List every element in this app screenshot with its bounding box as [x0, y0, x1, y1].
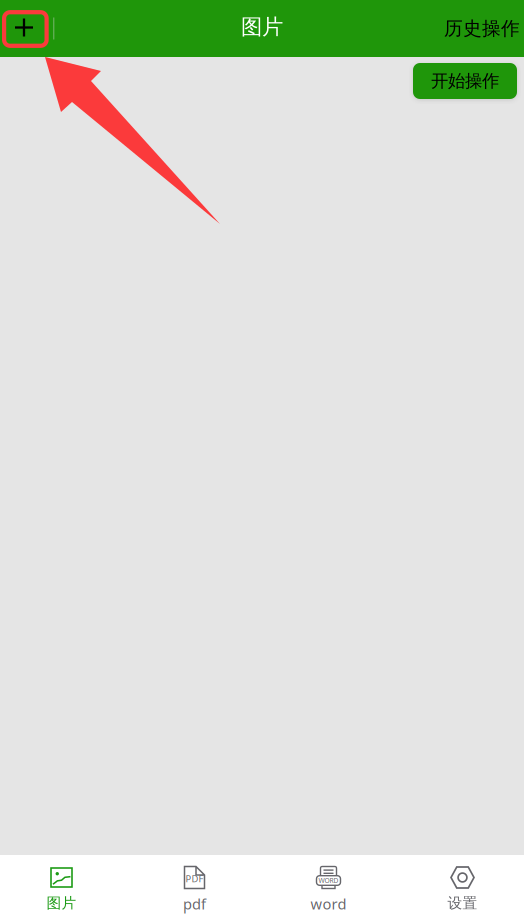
- staticText: WORD: [318, 876, 338, 885]
- button[interactable]: 开始操作: [413, 63, 517, 99]
- staticText: 图片: [241, 14, 283, 40]
- staticText: word: [310, 894, 346, 913]
- button[interactable]: 历史操作: [444, 9, 524, 48]
- staticText: PDF: [185, 873, 203, 885]
- staticText: 历史操作: [444, 17, 520, 40]
- staticText: 开始操作: [431, 70, 499, 92]
- button[interactable]: 添加: [3, 10, 47, 46]
- button[interactable]: WORD: [262, 855, 393, 916]
- button[interactable]: 图片: [0, 855, 131, 916]
- button[interactable]: 设置: [393, 855, 524, 916]
- staticText: 设置: [447, 894, 477, 912]
- button[interactable]: PDF: [131, 855, 262, 916]
- staticText: pdf: [183, 894, 206, 913]
- staticText: 图片: [46, 894, 76, 912]
